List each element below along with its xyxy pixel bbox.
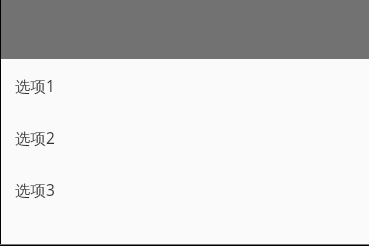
staticText: 选项2 bbox=[15, 127, 55, 148]
other: App bar bbox=[0, 0, 369, 59]
button[interactable]: 选项1 bbox=[0, 59, 369, 111]
staticText: 选项3 bbox=[15, 179, 55, 200]
staticText: 选项1 bbox=[15, 75, 55, 96]
button[interactable]: 选项3 bbox=[0, 163, 369, 215]
button[interactable]: 选项2 bbox=[0, 111, 369, 163]
